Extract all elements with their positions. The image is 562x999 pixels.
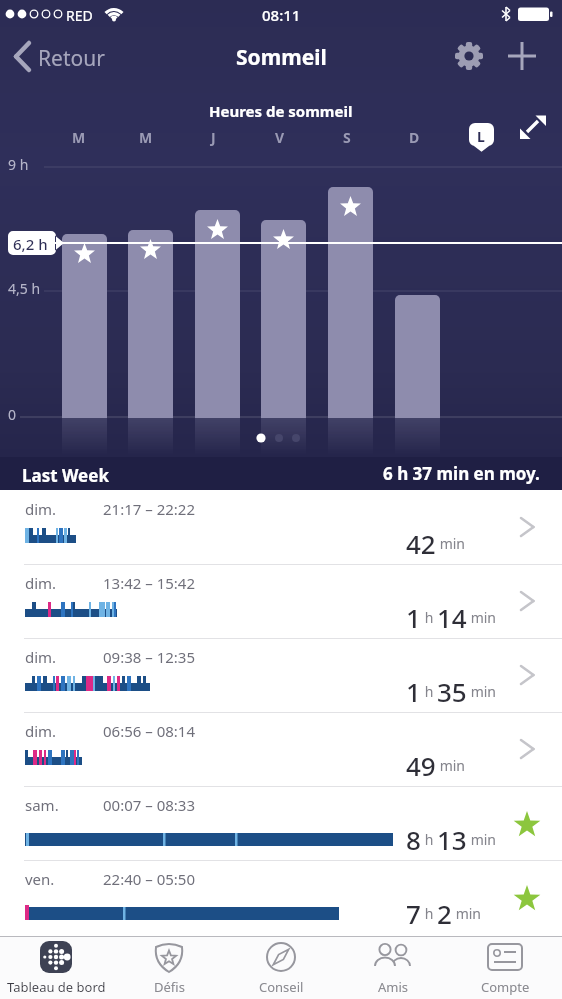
staticText: 7	[406, 896, 421, 926]
staticText: 1	[406, 674, 421, 704]
staticText: 9 h	[8, 155, 29, 174]
staticText: 0	[8, 405, 17, 424]
staticText: V	[275, 128, 285, 147]
staticText: dim.	[25, 499, 57, 519]
staticText: Last Week	[22, 464, 109, 487]
staticText: 35	[437, 674, 467, 704]
button[interactable]	[449, 36, 489, 76]
staticText: Retour	[38, 44, 105, 73]
button[interactable]: Défis	[113, 936, 225, 999]
staticText: S	[343, 128, 351, 147]
staticText: dim.	[25, 647, 57, 667]
staticText: Conseil	[259, 978, 304, 996]
staticText: Tableau de bord	[7, 978, 106, 996]
staticText: Compte	[481, 978, 530, 996]
staticText: 00:07 – 08:33	[103, 795, 195, 815]
button[interactable]: S	[332, 128, 362, 147]
staticText: min	[467, 830, 496, 849]
staticText: 42	[406, 526, 436, 556]
staticText: 14	[437, 600, 467, 630]
button[interactable]: dim.	[0, 564, 562, 638]
staticText: M	[139, 128, 153, 147]
staticText: RED	[66, 6, 93, 25]
button[interactable]: L	[466, 123, 496, 153]
staticText: h	[421, 608, 437, 627]
staticText: min	[467, 608, 496, 627]
staticText: 09:38 – 12:35	[103, 647, 195, 667]
button[interactable]: M	[131, 128, 161, 147]
staticText: min	[436, 534, 465, 553]
staticText: 1	[406, 600, 421, 630]
button[interactable]: Retour	[8, 36, 118, 76]
staticText: 22:40 – 05:50	[103, 869, 195, 889]
staticText: 6,2 h	[13, 234, 48, 254]
button[interactable]: Amis	[337, 936, 449, 999]
staticText: 06:56 – 08:14	[103, 721, 195, 741]
button[interactable]: J	[198, 128, 228, 147]
button[interactable]: Compte	[449, 936, 561, 999]
staticText: ven.	[25, 869, 55, 889]
button[interactable]: dim.	[0, 712, 562, 786]
staticText: min	[467, 682, 496, 701]
staticText: 49	[406, 748, 436, 778]
staticText: 6 h 37 min en moy.	[383, 462, 540, 485]
staticText: dim.	[25, 721, 57, 741]
staticText: 4,5 h	[8, 279, 41, 298]
staticText: Sommeil	[236, 43, 327, 72]
staticText: 8	[406, 822, 421, 852]
staticText: h	[421, 830, 437, 849]
staticText: 13:42 – 15:42	[103, 573, 195, 593]
staticText: M	[72, 128, 86, 147]
staticText: Amis	[378, 978, 409, 996]
button[interactable]: ven.	[0, 860, 562, 934]
button[interactable]: Conseil	[225, 936, 337, 999]
staticText: L	[477, 127, 485, 146]
staticText: min	[436, 756, 465, 775]
button[interactable]: dim.	[0, 638, 562, 712]
staticText: 08:11	[262, 5, 301, 25]
button[interactable]: Tableau de bord	[0, 936, 112, 999]
staticText: D	[409, 128, 420, 147]
button[interactable]: D	[399, 128, 429, 147]
staticText: 21:17 – 22:22	[103, 499, 195, 519]
button[interactable]: M	[64, 128, 94, 147]
staticText: J	[211, 128, 216, 147]
staticText: 2	[437, 896, 452, 926]
staticText: h	[421, 904, 437, 923]
staticText: Heures de sommeil	[209, 101, 353, 121]
button[interactable]	[502, 36, 542, 76]
button[interactable]: dim.	[0, 490, 562, 564]
button[interactable]: V	[265, 128, 295, 147]
staticText: sam.	[25, 795, 59, 815]
staticText: min	[452, 904, 481, 923]
button[interactable]: sam.	[0, 786, 562, 860]
staticText: Défis	[154, 978, 185, 996]
staticText: dim.	[25, 573, 57, 593]
staticText: 13	[437, 822, 467, 852]
staticText: h	[421, 682, 437, 701]
